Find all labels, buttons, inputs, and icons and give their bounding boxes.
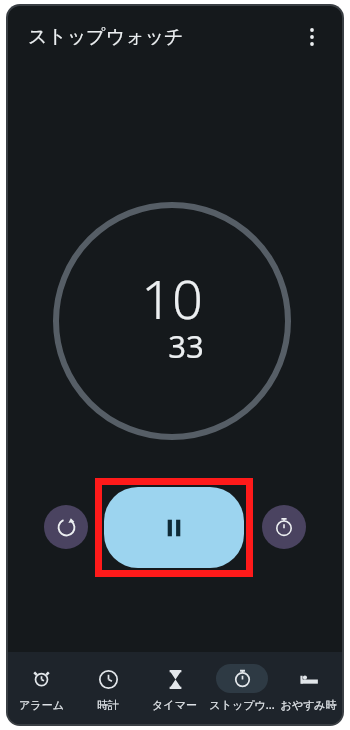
button[interactable]: Lap xyxy=(262,505,306,549)
button[interactable]: Reset xyxy=(44,505,88,549)
staticText: おやすみ時間 xyxy=(275,698,342,712)
button[interactable]: 時計 xyxy=(74,652,141,724)
button[interactable]: More options xyxy=(290,15,334,59)
button[interactable]: アラーム xyxy=(8,652,74,724)
button[interactable]: Pause xyxy=(104,487,244,568)
staticText: タイマー xyxy=(152,698,197,712)
staticText: ストップウ... xyxy=(209,697,275,712)
staticText: 10 xyxy=(141,261,203,335)
staticText: 33 xyxy=(168,325,204,367)
button[interactable]: おやすみ時間 xyxy=(275,652,342,724)
staticText: アラーム xyxy=(19,698,64,712)
staticText: 時計 xyxy=(97,698,119,712)
staticText: ストップウォッチ xyxy=(28,25,184,49)
button[interactable]: タイマー xyxy=(141,652,208,724)
button[interactable]: ストップウ... xyxy=(208,652,275,724)
